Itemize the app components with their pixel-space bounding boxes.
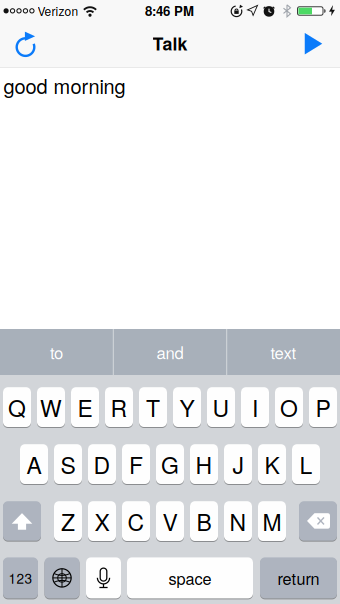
staticText: I — [252, 391, 258, 423]
button[interactable]: and — [114, 329, 226, 375]
staticText: K — [264, 448, 279, 480]
staticText: good morning — [3, 71, 125, 100]
button[interactable]: P — [309, 387, 337, 427]
button[interactable]: text — [227, 329, 339, 375]
staticText: text — [270, 340, 296, 364]
staticText: Q — [8, 391, 26, 423]
button[interactable]: M — [258, 501, 286, 541]
staticText: X — [94, 505, 109, 537]
staticText: D — [93, 448, 110, 480]
staticText: M — [262, 505, 281, 537]
staticText: O — [280, 391, 298, 423]
button[interactable]: E — [71, 387, 99, 427]
staticText: R — [110, 391, 127, 423]
staticText: T — [146, 391, 160, 423]
staticText: Z — [61, 505, 75, 537]
button[interactable]: Speak — [295, 23, 332, 64]
button[interactable]: V — [156, 501, 184, 541]
button[interactable]: to — [0, 329, 112, 375]
button[interactable]: J — [224, 444, 252, 484]
staticText: F — [129, 448, 143, 480]
button[interactable]: Y — [173, 387, 201, 427]
button[interactable]: A — [20, 444, 48, 484]
button[interactable]: Z — [54, 501, 82, 541]
staticText: and — [156, 340, 183, 364]
staticText: 123 — [8, 568, 32, 588]
staticText: return — [277, 566, 319, 590]
staticText: U — [212, 391, 229, 423]
staticText: H — [195, 448, 212, 480]
button[interactable]: T — [139, 387, 167, 427]
staticText: 8:46 PM — [145, 1, 194, 20]
staticText: N — [229, 505, 246, 537]
button[interactable]: S — [54, 444, 82, 484]
button[interactable]: N — [224, 501, 252, 541]
staticText: space — [168, 566, 211, 590]
button[interactable]: H — [190, 444, 218, 484]
button[interactable]: I — [241, 387, 269, 427]
button[interactable]: O — [275, 387, 303, 427]
button[interactable]: Shift — [3, 501, 41, 541]
staticText: G — [161, 448, 179, 480]
button[interactable]: K — [258, 444, 286, 484]
staticText: Y — [179, 391, 194, 423]
button[interactable]: C — [122, 501, 150, 541]
staticText: C — [127, 505, 144, 537]
button[interactable]: Numbers — [3, 557, 38, 599]
staticText: W — [40, 391, 62, 423]
button[interactable]: F — [122, 444, 150, 484]
button[interactable]: D — [88, 444, 116, 484]
button[interactable]: space — [127, 557, 253, 599]
staticText: B — [196, 505, 211, 537]
staticText: L — [299, 448, 312, 480]
staticText: E — [77, 391, 92, 423]
staticText: S — [60, 448, 75, 480]
button[interactable]: Next keyboard — [44, 557, 79, 599]
button[interactable]: R — [105, 387, 133, 427]
button[interactable]: Refresh — [5, 23, 45, 63]
staticText: V — [162, 505, 177, 537]
staticText: P — [315, 391, 330, 423]
button[interactable]: B — [190, 501, 218, 541]
button[interactable]: U — [207, 387, 235, 427]
staticText: Verizon — [37, 2, 78, 19]
button[interactable]: L — [292, 444, 320, 484]
staticText: Talk — [152, 30, 187, 56]
button[interactable]: W — [37, 387, 65, 427]
button[interactable]: Delete — [299, 501, 337, 541]
button[interactable]: Dictate — [86, 557, 121, 599]
button[interactable]: G — [156, 444, 184, 484]
staticText: J — [232, 448, 243, 480]
button[interactable]: return — [260, 557, 337, 599]
staticText: to — [50, 340, 63, 364]
staticText: A — [26, 448, 41, 480]
button[interactable]: X — [88, 501, 116, 541]
button[interactable]: Q — [3, 387, 31, 427]
